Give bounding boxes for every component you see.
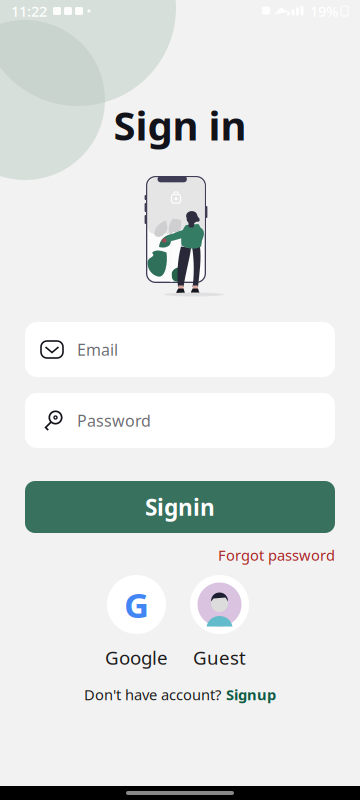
staticText: Signup: [226, 685, 276, 704]
staticText: Don't have account?: [84, 685, 221, 704]
staticText: Sign in: [113, 98, 246, 151]
staticText: Signin: [145, 492, 215, 522]
button[interactable]: G: [105, 575, 168, 670]
button[interactable]: Guest: [190, 575, 249, 670]
button[interactable]: Signup: [226, 685, 276, 704]
staticText: Password: [77, 410, 151, 431]
staticText: G: [124, 581, 149, 627]
staticText: 11:22: [11, 1, 47, 21]
staticText: Google: [105, 645, 168, 670]
staticText: 19%: [310, 1, 338, 21]
staticText: Forgot password: [218, 545, 335, 565]
staticText: Email: [77, 339, 118, 360]
staticText: Guest: [193, 645, 246, 670]
button[interactable]: Forgot password: [218, 545, 335, 565]
button[interactable]: Signin: [0, 481, 360, 533]
